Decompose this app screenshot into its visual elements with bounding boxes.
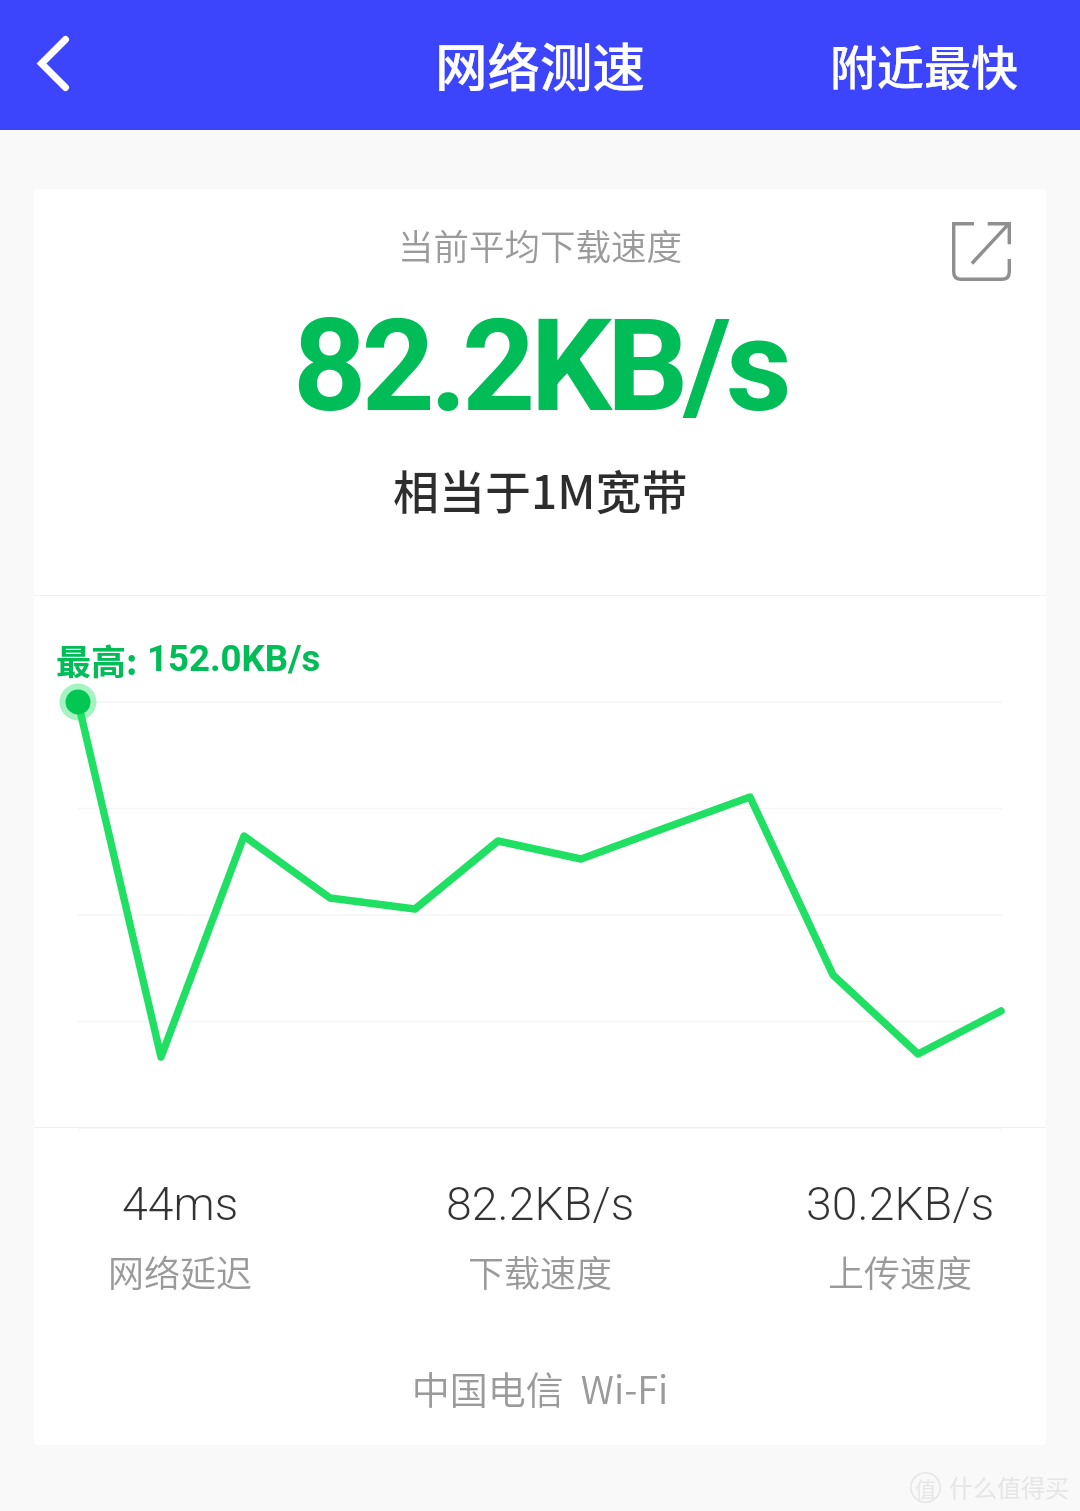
staticText: 网络延迟	[108, 1245, 253, 1297]
staticText: 中国电信 Wi-Fi	[34, 1360, 1046, 1415]
staticText: 82.2KB/s	[293, 291, 787, 441]
staticText: 值	[915, 1473, 936, 1503]
staticText: 什么值得买	[949, 1469, 1069, 1504]
staticText: 当前平均下载速度	[398, 219, 683, 270]
staticText: 44ms	[122, 1177, 239, 1231]
button[interactable]: Share	[936, 206, 1026, 296]
staticText: 82.2KB/s	[446, 1177, 635, 1231]
button[interactable]: 附近最快	[799, 1, 1080, 129]
staticText: 网络测速	[435, 26, 646, 102]
staticText: 相当于1M宽带	[393, 456, 688, 523]
button[interactable]: 44ms	[34, 1177, 360, 1297]
staticText: 附近最快	[830, 30, 1018, 98]
staticText: 30.2KB/s	[806, 1177, 995, 1231]
staticText: 最高:	[56, 634, 138, 685]
button[interactable]: 82.2KB/s	[360, 1177, 720, 1297]
staticText: 下载速度	[468, 1245, 613, 1297]
button[interactable]: Back	[0, 0, 110, 130]
button[interactable]: 30.2KB/s	[720, 1177, 1046, 1297]
staticText: 上传速度	[828, 1245, 973, 1297]
staticText: 152.0KB/s	[138, 637, 321, 680]
